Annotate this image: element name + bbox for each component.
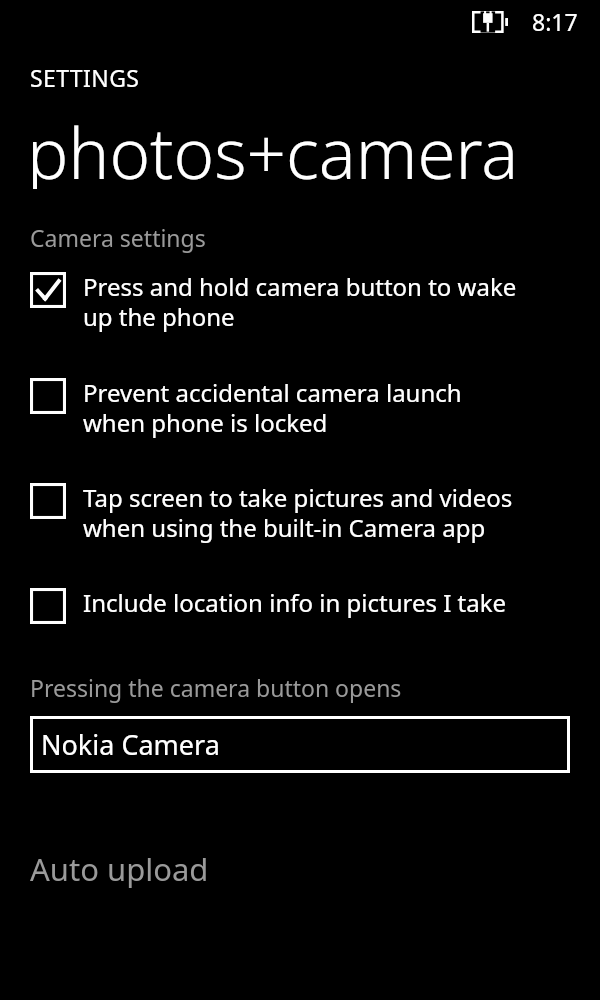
button[interactable]: Include location info in pictures I take [0, 544, 600, 622]
staticText: Press and hold camera button to wake up … [83, 270, 517, 333]
button[interactable]: Nokia Camera [30, 716, 570, 773]
staticText: Prevent accidental camera launch when ph… [83, 376, 462, 439]
staticText: 8:17 [532, 6, 578, 37]
staticText: photos+camera [27, 105, 519, 189]
button[interactable]: Auto upload [0, 846, 600, 896]
button[interactable]: Tap screen to take pictures and videos w… [0, 439, 600, 544]
staticText: Pressing the camera button opens [30, 672, 402, 703]
button[interactable]: Prevent accidental camera launch when ph… [0, 333, 600, 439]
staticText: Auto upload [30, 848, 209, 890]
other: Battery charging [472, 11, 508, 33]
staticText: Include location info in pictures I take [83, 586, 507, 619]
button[interactable]: Press and hold camera button to wake up … [0, 253, 600, 333]
staticText: Camera settings [30, 222, 206, 253]
staticText: Tap screen to take pictures and videos w… [83, 481, 513, 544]
staticText: Nokia Camera [41, 726, 220, 763]
staticText: SETTINGS [30, 62, 140, 93]
